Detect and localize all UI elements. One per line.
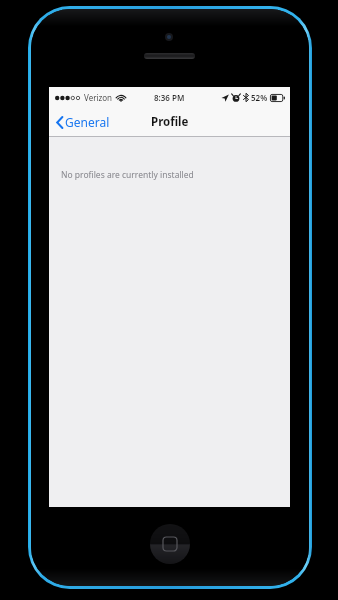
button[interactable]: General — [49, 107, 116, 137]
staticText: Profile — [151, 114, 189, 130]
staticText: No profiles are currently installed — [61, 169, 194, 181]
button[interactable]: Home — [150, 524, 190, 564]
staticText: General — [65, 114, 110, 130]
staticText: 52% — [251, 92, 268, 103]
staticText: 8:36 PM — [154, 92, 185, 103]
staticText: Verizon — [84, 92, 113, 103]
